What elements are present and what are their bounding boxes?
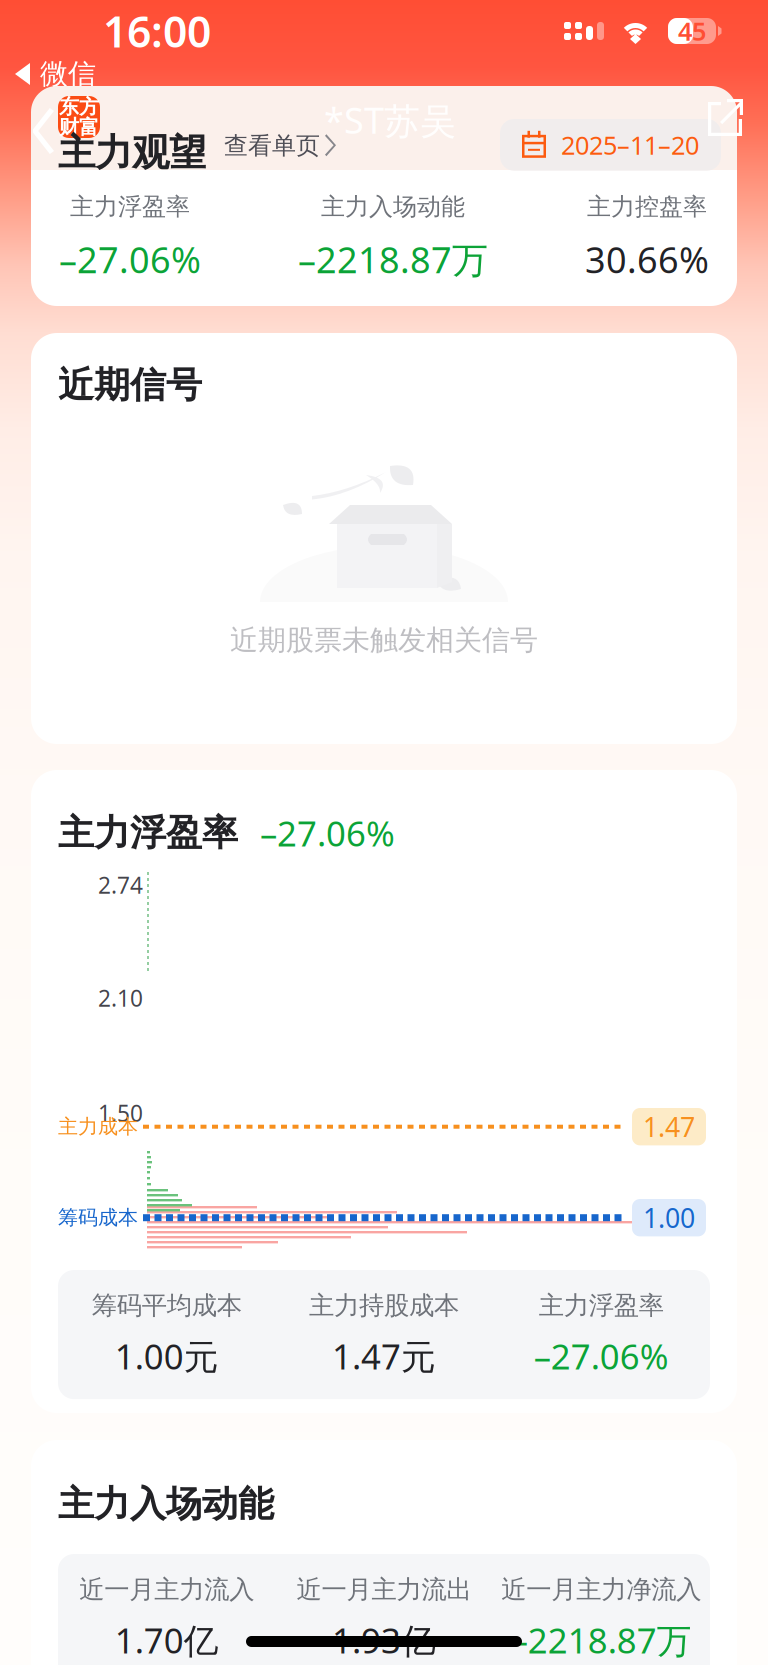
staticText: 财富 [59, 115, 99, 140]
staticText: 2.74 [98, 870, 143, 900]
staticText: 1.93亿 [332, 1617, 436, 1663]
staticText: –2218.87万 [511, 1617, 692, 1663]
staticText: 45 [678, 14, 706, 48]
staticText: –27.06% [59, 235, 201, 283]
staticText: 1.70亿 [115, 1617, 219, 1663]
staticText: 主力入场动能 [58, 1482, 274, 1526]
staticText: *ST苏吴 [324, 96, 456, 144]
staticText: 1.47 [643, 1109, 695, 1144]
staticText: 近一月主力流出 [296, 1574, 471, 1605]
staticText: 1.00元 [115, 1333, 219, 1379]
staticText: 16:00 [103, 3, 211, 59]
staticText: –27.06% [534, 1333, 669, 1379]
staticText: 近期信号 [58, 363, 202, 407]
button[interactable]: 分享 [708, 99, 745, 137]
staticText: –2218.87万 [298, 235, 488, 283]
staticText: 2025–11–20 [561, 128, 699, 162]
staticText: 主力成本 [58, 1114, 138, 1139]
staticText: 主力持股成本 [309, 1290, 459, 1321]
staticText: 主力浮盈率 [539, 1290, 664, 1321]
staticText: 2.10 [98, 983, 143, 1013]
staticText: 微信 [40, 57, 96, 91]
staticText: 主力观望 [58, 130, 206, 176]
staticText: 1.47元 [332, 1333, 436, 1379]
staticText: 1.50 [98, 1098, 143, 1128]
button[interactable]: 查看单页 [224, 131, 337, 160]
staticText: 近一月主力净流入 [501, 1574, 701, 1605]
staticText: 筹码成本 [58, 1205, 138, 1230]
staticText: 近一月主力流入 [79, 1574, 254, 1605]
staticText: 主力入场动能 [321, 192, 465, 221]
staticText: 主力浮盈率 [58, 811, 238, 855]
staticText: 近期股票未触发相关信号 [230, 623, 538, 657]
staticText: –27.06% [260, 810, 395, 856]
button[interactable]: 2025–11–20 [500, 119, 721, 171]
staticText: 查看单页 [224, 131, 320, 160]
staticText: 主力控盘率 [587, 192, 707, 221]
staticText: 30.66% [585, 235, 709, 283]
staticText: 筹码平均成本 [92, 1290, 242, 1321]
staticText: 1.00 [643, 1200, 695, 1235]
staticText: 主力浮盈率 [70, 192, 190, 221]
button[interactable]: 返回微信 [0, 62, 768, 86]
staticText: 东方 [59, 94, 99, 119]
